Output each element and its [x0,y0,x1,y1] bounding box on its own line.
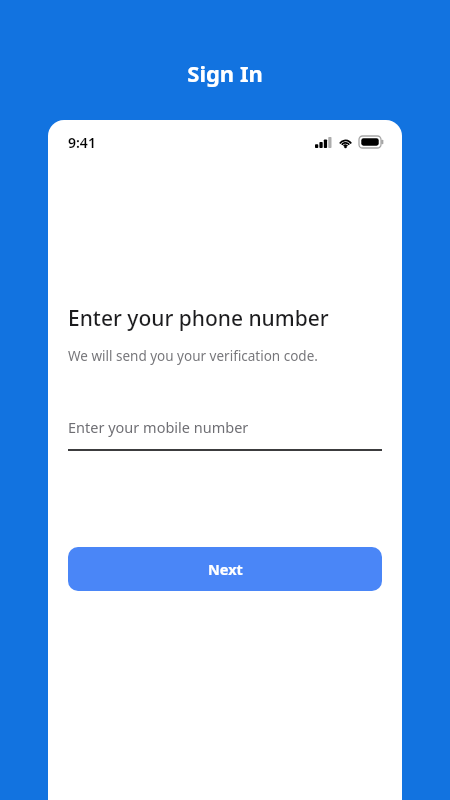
other: Cellular signal [315,137,332,148]
staticText: We will send you your verification code. [68,347,318,365]
button[interactable]: Enter your mobile number [68,417,382,451]
staticText: Next [208,559,243,579]
other: Wi-Fi [338,137,353,148]
staticText: Sign In [0,58,450,88]
staticText: 9:41 [68,133,96,152]
staticText: Enter your mobile number [68,417,249,437]
staticText: Enter your phone number [68,304,329,333]
other: Battery [359,136,384,148]
button[interactable]: Next [68,547,382,591]
